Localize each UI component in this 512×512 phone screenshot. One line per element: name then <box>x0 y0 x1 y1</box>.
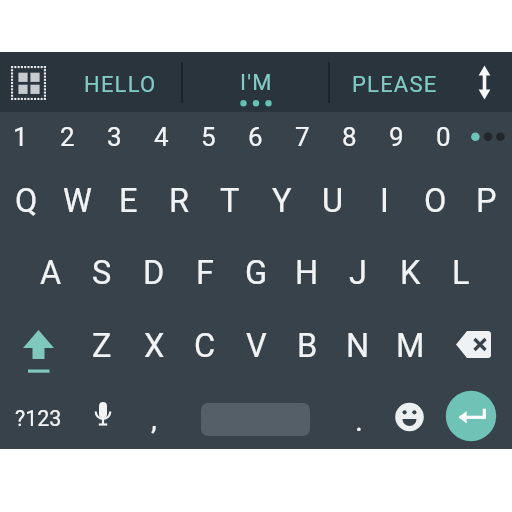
staticText: 7 <box>295 122 310 152</box>
staticText: . <box>355 403 363 438</box>
staticText: J <box>349 254 367 292</box>
button[interactable] <box>451 328 496 362</box>
staticText: W <box>63 182 92 220</box>
button[interactable]: D <box>129 240 179 306</box>
button[interactable]: M <box>385 313 435 379</box>
button[interactable]: 5 <box>188 117 228 157</box>
staticText: V <box>246 327 267 365</box>
staticText: G <box>245 254 268 292</box>
staticText: U <box>322 182 344 220</box>
button[interactable]: I <box>359 168 409 234</box>
staticText: I <box>380 182 389 220</box>
button[interactable]: W <box>52 168 102 234</box>
staticText: H <box>295 254 319 292</box>
staticText: ?123 <box>15 406 62 431</box>
button[interactable] <box>8 63 49 103</box>
staticText: A <box>40 254 62 292</box>
staticText: M <box>396 327 425 365</box>
button[interactable]: 6 <box>235 117 275 157</box>
staticText: R <box>169 182 190 220</box>
button[interactable]: R <box>154 168 204 234</box>
button[interactable] <box>201 403 310 436</box>
button[interactable]: Z <box>77 313 127 379</box>
staticText: X <box>144 327 165 365</box>
staticText: 9 <box>389 122 404 152</box>
button[interactable] <box>21 328 57 374</box>
staticText: 4 <box>154 122 169 152</box>
staticText: F <box>196 254 214 292</box>
staticText: Q <box>15 182 38 220</box>
button[interactable]: G <box>231 240 281 306</box>
button[interactable]: 7 <box>282 117 322 157</box>
button[interactable]: A <box>26 240 76 306</box>
button[interactable]: P <box>461 168 511 234</box>
button[interactable]: 2 <box>47 117 87 157</box>
button[interactable]: Q <box>1 168 51 234</box>
button[interactable]: E <box>103 168 153 234</box>
staticText: 3 <box>107 122 122 152</box>
button[interactable]: HELLO <box>65 61 175 109</box>
button[interactable]: Y <box>257 168 307 234</box>
staticText: P <box>476 182 497 220</box>
staticText: B <box>297 327 318 365</box>
button[interactable]: 1 <box>0 117 40 157</box>
staticText: T <box>220 182 240 220</box>
button[interactable]: H <box>282 240 332 306</box>
button[interactable]: F <box>180 240 230 306</box>
staticText: Z <box>92 327 112 365</box>
button[interactable]: X <box>129 313 179 379</box>
button[interactable]: N <box>333 313 383 379</box>
button[interactable]: K <box>385 240 435 306</box>
button[interactable] <box>88 398 118 436</box>
staticText: I'M <box>240 70 273 96</box>
button[interactable]: O <box>410 168 460 234</box>
staticText: E <box>119 182 138 220</box>
button[interactable]: L <box>436 240 486 306</box>
staticText: 1 <box>13 122 28 152</box>
button[interactable]: 9 <box>376 117 416 157</box>
staticText: O <box>424 182 447 220</box>
staticText: 6 <box>248 122 263 152</box>
button[interactable]: S <box>77 240 127 306</box>
button[interactable]: . <box>339 390 379 450</box>
button[interactable]: 4 <box>141 117 181 157</box>
button[interactable] <box>0 52 512 112</box>
button[interactable]: , <box>134 388 174 448</box>
button[interactable]: I'M <box>201 60 311 106</box>
staticText: PLEASE <box>352 72 438 98</box>
button[interactable]: J <box>333 240 383 306</box>
staticText: HELLO <box>84 72 157 98</box>
button[interactable]: 3 <box>94 117 134 157</box>
staticText: D <box>143 254 165 292</box>
staticText: N <box>346 327 370 365</box>
staticText: 0 <box>436 122 451 152</box>
staticText: 2 <box>60 122 75 152</box>
staticText: 5 <box>201 122 216 152</box>
staticText: C <box>194 327 216 365</box>
button[interactable] <box>469 62 500 103</box>
button[interactable]: T <box>205 168 255 234</box>
button[interactable]: 0 <box>423 117 463 157</box>
button[interactable]: C <box>180 313 230 379</box>
staticText: L <box>452 254 470 292</box>
staticText: K <box>400 254 421 292</box>
button[interactable]: PLEASE <box>337 61 453 109</box>
button[interactable] <box>446 391 497 442</box>
staticText: Y <box>272 182 292 220</box>
staticText: , <box>151 401 157 436</box>
button[interactable]: U <box>308 168 358 234</box>
staticText: S <box>92 254 112 292</box>
button[interactable] <box>393 401 426 434</box>
button[interactable]: ?123 <box>7 390 69 446</box>
button[interactable]: B <box>282 313 332 379</box>
staticText: 8 <box>342 122 357 152</box>
button[interactable]: 8 <box>329 117 369 157</box>
button[interactable]: V <box>231 313 281 379</box>
